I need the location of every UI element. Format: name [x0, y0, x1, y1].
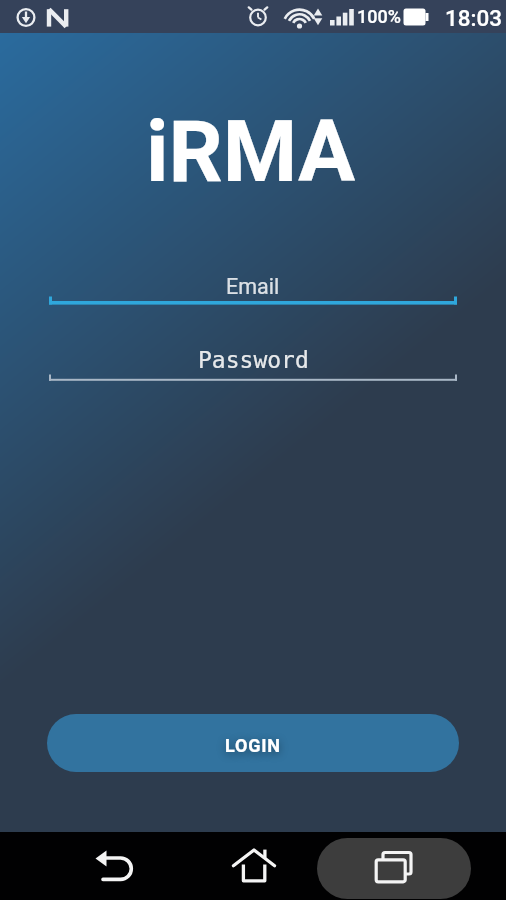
- button[interactable]: [47, 340, 459, 384]
- staticText: iRMA: [146, 102, 356, 202]
- staticText: Email: [226, 274, 280, 299]
- button[interactable]: LOGIN: [47, 714, 459, 772]
- staticText: 18:03: [445, 5, 503, 31]
- staticText: 100%: [357, 6, 401, 27]
- button[interactable]: [47, 262, 459, 308]
- staticText: LOGIN: [225, 735, 281, 756]
- staticText: Password: [198, 347, 309, 374]
- button[interactable]: [60, 832, 170, 900]
- button[interactable]: [200, 832, 310, 900]
- button[interactable]: [317, 838, 471, 899]
